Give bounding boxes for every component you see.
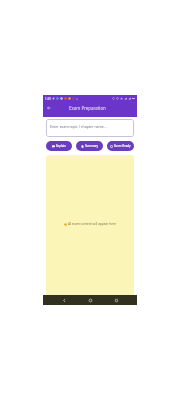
staticText: Summary bbox=[85, 144, 99, 148]
staticText: AI exam content will appear here bbox=[68, 222, 116, 226]
button[interactable]: Recent apps bbox=[112, 296, 121, 305]
staticText: 1:30 bbox=[45, 97, 51, 101]
button[interactable]: Home bbox=[86, 296, 95, 305]
staticText: Exam Preparation bbox=[69, 105, 106, 111]
button[interactable]: Summary bbox=[76, 141, 103, 151]
button[interactable]: Enter exam topic / chapter name... bbox=[46, 119, 134, 137]
button[interactable]: Exam Ready bbox=[107, 141, 134, 151]
staticText: Exam Ready bbox=[114, 144, 131, 148]
button[interactable]: Back bbox=[60, 296, 69, 305]
staticText: Explain bbox=[56, 144, 66, 148]
button[interactable]: Back bbox=[45, 104, 53, 112]
staticText: Enter exam topic / chapter name... bbox=[50, 124, 107, 129]
button[interactable]: Explain bbox=[46, 141, 72, 151]
